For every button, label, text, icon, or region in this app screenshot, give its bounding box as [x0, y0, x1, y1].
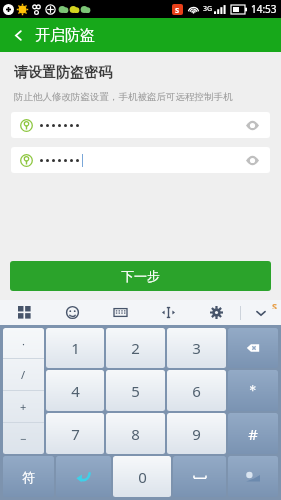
button[interactable]: 符 [3, 456, 54, 497]
button[interactable]: Hide keyboard [241, 300, 281, 325]
staticText: 5 [131, 381, 140, 401]
staticText: 符 [22, 469, 35, 485]
staticText: 0 [138, 467, 147, 487]
staticText: # [248, 424, 258, 444]
staticText: 下一步 [121, 268, 160, 284]
staticText: 6 [192, 381, 201, 401]
button[interactable]: · [3, 328, 44, 358]
staticText: 3G [203, 4, 213, 14]
button[interactable]: 9 [167, 413, 226, 454]
button[interactable]: + [3, 391, 44, 422]
button[interactable]: − [3, 423, 44, 454]
staticText: 1 [71, 338, 80, 358]
staticText: S [175, 5, 180, 15]
button[interactable]: Settings [192, 300, 240, 325]
staticText: S [272, 300, 277, 309]
button[interactable]: 6 [167, 370, 226, 411]
staticText: 9 [192, 424, 201, 444]
staticText: 3 [192, 338, 201, 358]
button[interactable]: / [3, 359, 44, 390]
button[interactable]: Voice input [228, 456, 278, 497]
button[interactable]: 2 [106, 328, 165, 368]
button[interactable]: 0 [113, 456, 171, 497]
button[interactable]: Cursor [144, 300, 192, 325]
button[interactable]: Show password [11, 147, 270, 173]
button[interactable]: 8 [106, 413, 165, 454]
button[interactable]: Show password [239, 112, 265, 138]
staticText: 8 [131, 424, 140, 444]
staticText: 7 [71, 424, 80, 444]
button[interactable]: Space [173, 456, 226, 497]
staticText: 防止他人修改防盗设置，手机被盗后可远程控制手机 [14, 91, 233, 103]
button[interactable]: Apps [0, 300, 48, 325]
staticText: + [20, 399, 27, 414]
staticText: − [20, 431, 27, 446]
staticText: 4 [71, 381, 80, 401]
staticText: 请设置防盗密码 [14, 64, 112, 82]
button[interactable]: 3 [167, 328, 226, 368]
button[interactable]: 下一步 [10, 261, 271, 291]
staticText: 14:53 [251, 2, 277, 16]
button[interactable]: 7 [46, 413, 104, 454]
button[interactable]: 1 [46, 328, 104, 368]
button[interactable]: Emoji [48, 300, 96, 325]
button[interactable]: Show password [11, 112, 270, 138]
button[interactable]: Backspace [228, 328, 278, 368]
staticText: · [22, 336, 25, 351]
staticText: 2 [131, 338, 140, 358]
staticText: 开启防盗 [35, 26, 95, 45]
button[interactable]: Return [56, 456, 111, 497]
button[interactable]: Show password [239, 147, 265, 173]
staticText: ＊ [246, 382, 260, 400]
button[interactable]: 5 [106, 370, 165, 411]
button[interactable]: 4 [46, 370, 104, 411]
button[interactable]: Keyboard [96, 300, 144, 325]
button[interactable]: # [228, 413, 278, 454]
staticText: / [21, 367, 26, 382]
button[interactable]: ＊ [228, 370, 278, 411]
button[interactable]: Back [0, 26, 107, 45]
